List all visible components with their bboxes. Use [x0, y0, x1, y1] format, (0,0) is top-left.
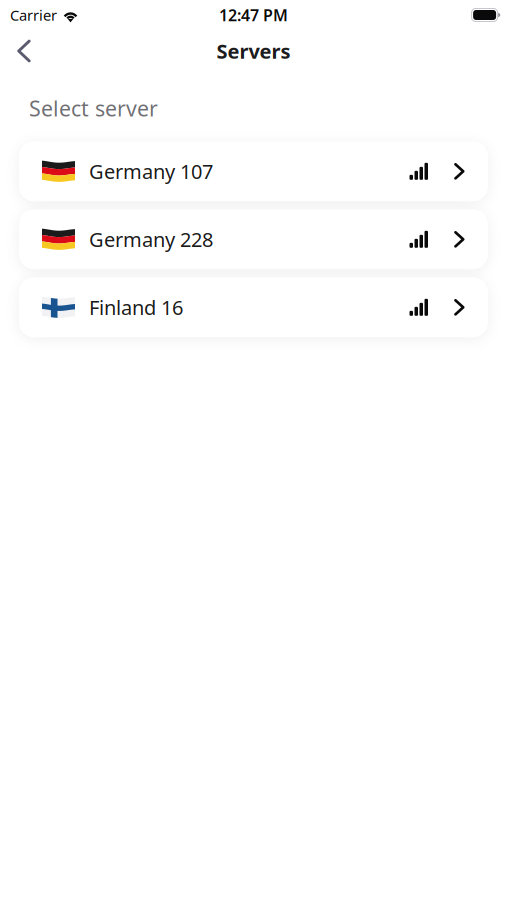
- staticText: Carrier: [10, 5, 57, 25]
- button[interactable]: Germany 107: [19, 141, 488, 201]
- staticText: Servers: [216, 38, 290, 64]
- staticText: Germany 228: [89, 226, 213, 253]
- staticText: 12:47 PM: [219, 4, 288, 26]
- button[interactable]: Germany 228: [19, 209, 488, 269]
- staticText: Finland 16: [89, 294, 183, 321]
- button[interactable]: Finland 16: [19, 277, 488, 337]
- staticText: Germany 107: [89, 158, 213, 185]
- button[interactable]: Back: [5, 30, 43, 71]
- staticText: Select server: [29, 94, 158, 122]
